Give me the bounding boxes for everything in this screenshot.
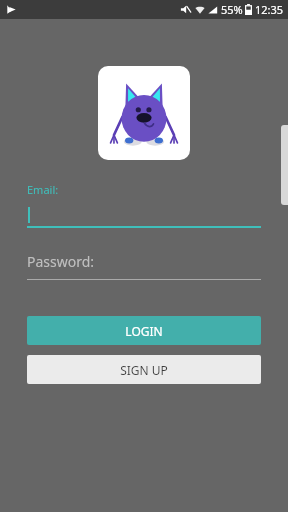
button[interactable]: LOGIN [27,316,261,345]
button[interactable]: SIGN UP [27,355,261,384]
staticText: Password: [27,252,95,271]
staticText: 55% [221,2,243,17]
staticText: SIGN UP [120,362,168,378]
staticText: LOGIN [125,323,163,339]
staticText: 12:35 [255,2,284,17]
button[interactable]: Password: [27,252,261,280]
button[interactable]: Email: [27,182,261,228]
staticText: Email: [27,182,59,197]
